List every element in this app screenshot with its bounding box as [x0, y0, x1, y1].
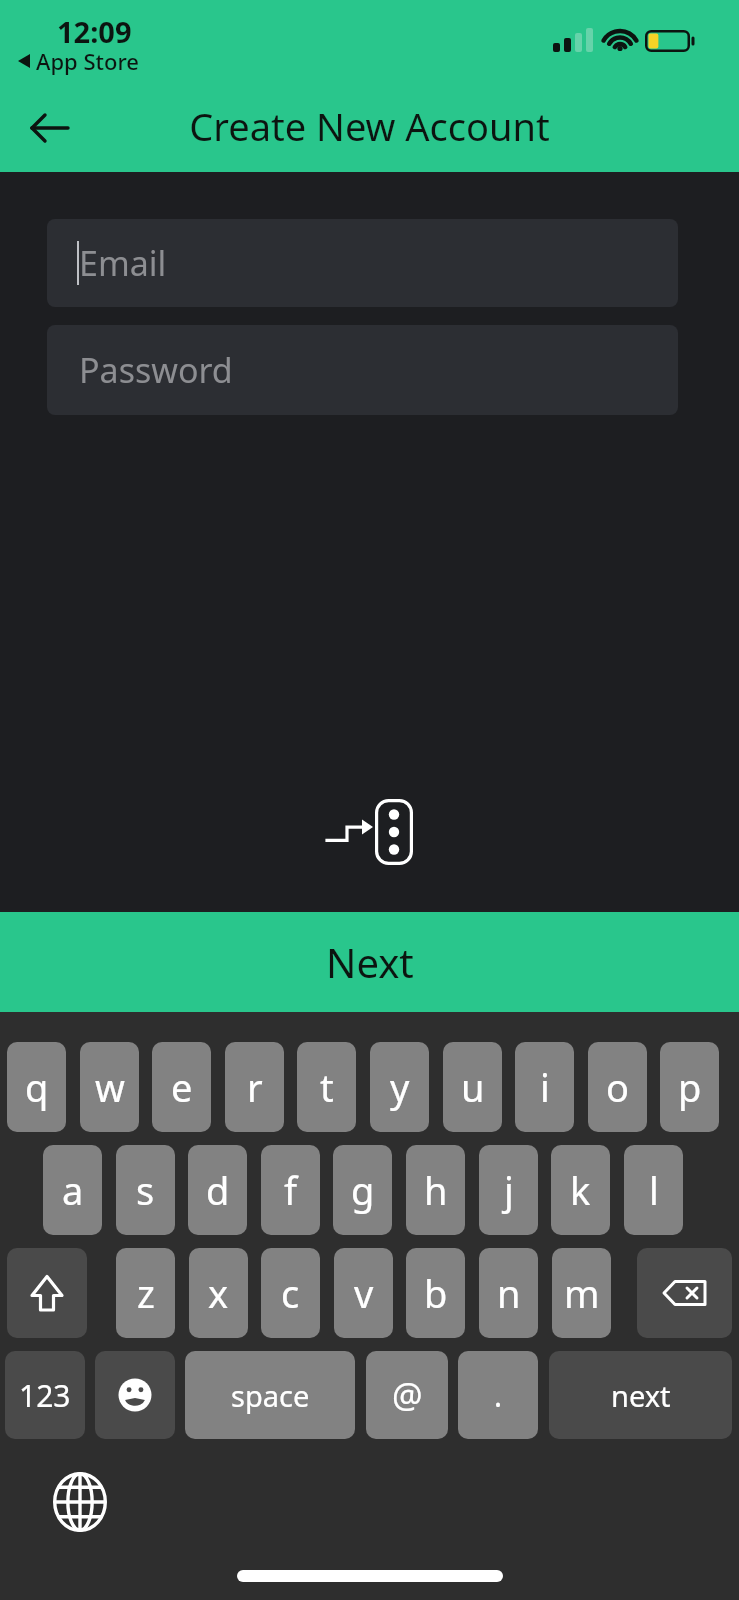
button[interactable]: v — [334, 1248, 393, 1338]
staticText: a — [62, 1164, 84, 1216]
staticText: Password — [79, 347, 233, 393]
button[interactable]: l — [624, 1145, 683, 1235]
staticText: m — [564, 1267, 600, 1319]
button[interactable]: r — [225, 1042, 284, 1132]
staticText: y — [390, 1061, 410, 1113]
button[interactable]: p — [660, 1042, 719, 1132]
button[interactable]: a — [43, 1145, 102, 1235]
staticText: i — [540, 1061, 550, 1113]
button[interactable]: w — [80, 1042, 139, 1132]
staticText: l — [649, 1164, 659, 1216]
staticText: n — [497, 1267, 521, 1319]
staticText: Next — [326, 935, 414, 989]
button[interactable]: i — [515, 1042, 574, 1132]
button[interactable]: 123 — [5, 1351, 85, 1439]
staticText: f — [284, 1164, 298, 1216]
staticText: q — [25, 1061, 49, 1113]
button[interactable]: o — [588, 1042, 647, 1132]
button[interactable]: u — [443, 1042, 502, 1132]
button[interactable]: b — [406, 1248, 465, 1338]
staticText: t — [320, 1061, 334, 1113]
button[interactable]: next — [549, 1351, 732, 1439]
staticText: e — [171, 1061, 193, 1113]
button[interactable]: t — [297, 1042, 356, 1132]
staticText: j — [504, 1164, 514, 1216]
button[interactable]: k — [551, 1145, 610, 1235]
staticText: App Store — [36, 46, 139, 76]
staticText: p — [678, 1061, 702, 1113]
button[interactable]: x — [189, 1248, 248, 1338]
staticText: @ — [392, 1372, 423, 1418]
staticText: d — [206, 1164, 230, 1216]
button[interactable]: s — [116, 1145, 175, 1235]
button[interactable]: d — [188, 1145, 247, 1235]
button[interactable]: c — [261, 1248, 320, 1338]
staticText: c — [281, 1267, 300, 1319]
staticText: space — [231, 1376, 310, 1415]
staticText: g — [351, 1164, 375, 1216]
staticText: z — [137, 1267, 155, 1319]
button[interactable]: Password — [47, 325, 678, 415]
staticText: k — [570, 1164, 591, 1216]
staticText: h — [424, 1164, 448, 1216]
button[interactable]: Next — [0, 912, 739, 1012]
staticText: Create New Account — [0, 100, 739, 152]
staticText: v — [354, 1267, 374, 1319]
button[interactable]: Emoji — [95, 1351, 175, 1439]
staticText: x — [208, 1267, 229, 1319]
staticText: 123 — [19, 1375, 71, 1416]
button[interactable]: Backspace — [637, 1248, 732, 1338]
staticText: 12:09 — [57, 12, 132, 51]
button[interactable]: Email — [47, 219, 678, 307]
button[interactable]: z — [116, 1248, 175, 1338]
button[interactable]: Switch language — [40, 1462, 120, 1542]
button[interactable]: m — [552, 1248, 611, 1338]
staticText: s — [136, 1164, 155, 1216]
button[interactable]: Back — [12, 90, 88, 166]
button[interactable]: y — [370, 1042, 429, 1132]
staticText: o — [606, 1061, 629, 1113]
button[interactable]: f — [261, 1145, 320, 1235]
button[interactable]: e — [152, 1042, 211, 1132]
staticText: . — [494, 1375, 503, 1416]
button[interactable]: . — [458, 1351, 538, 1439]
staticText: r — [247, 1061, 263, 1113]
button[interactable]: g — [333, 1145, 392, 1235]
button[interactable]: h — [406, 1145, 465, 1235]
button[interactable]: @ — [366, 1351, 448, 1439]
staticText: Email — [79, 240, 167, 286]
button[interactable]: Shift — [7, 1248, 87, 1338]
button[interactable]: q — [7, 1042, 66, 1132]
button[interactable]: n — [479, 1248, 538, 1338]
staticText: next — [611, 1376, 671, 1415]
staticText: w — [95, 1061, 125, 1113]
button[interactable]: j — [479, 1145, 538, 1235]
staticText: b — [424, 1267, 448, 1319]
button[interactable]: space — [185, 1351, 355, 1439]
staticText: u — [461, 1061, 485, 1113]
